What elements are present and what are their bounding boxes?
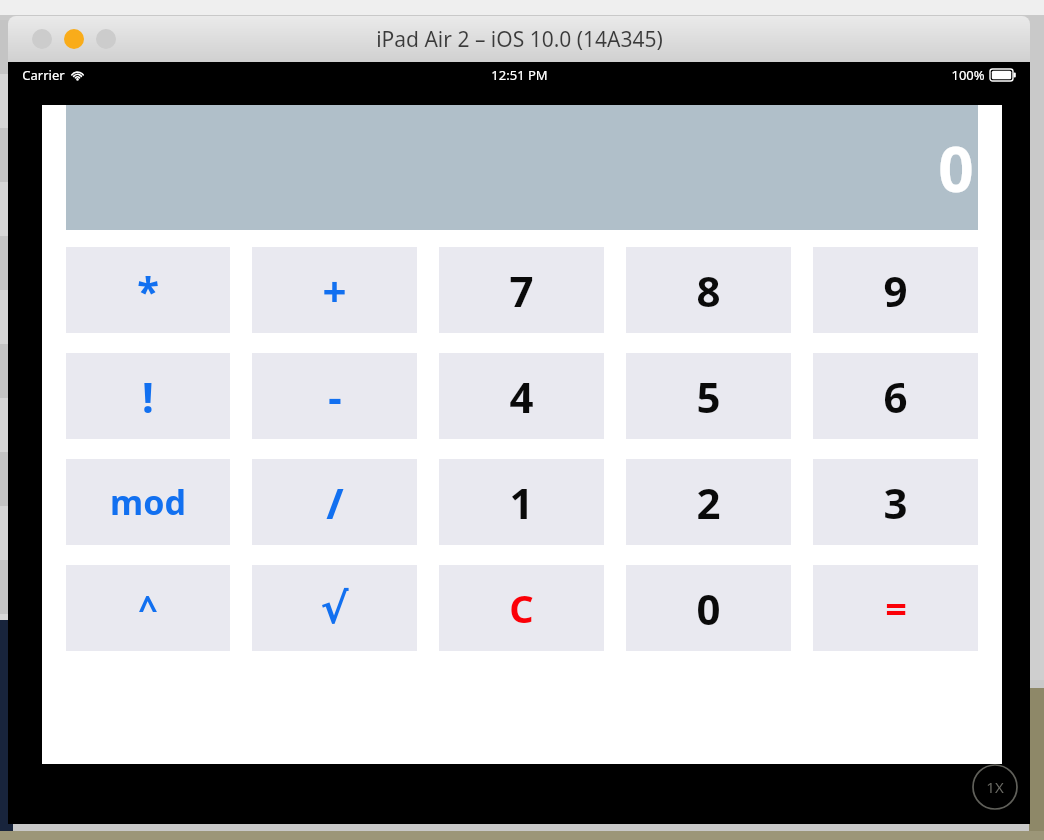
button[interactable]: 9: [813, 247, 978, 333]
button[interactable]: 5: [626, 353, 791, 439]
button[interactable]: !: [66, 353, 230, 439]
staticText: !: [142, 368, 154, 425]
staticText: 100%: [951, 66, 985, 84]
button[interactable]: ^: [66, 565, 230, 651]
button[interactable]: mod: [66, 459, 230, 545]
staticText: 12:51 PM: [491, 66, 548, 84]
staticText: 5: [696, 368, 721, 425]
button[interactable]: 3: [813, 459, 978, 545]
button[interactable]: √: [252, 565, 417, 651]
button[interactable]: 4: [439, 353, 604, 439]
staticText: 0: [938, 126, 974, 210]
staticText: 4: [509, 368, 534, 425]
button[interactable]: 1: [439, 459, 604, 545]
button[interactable]: Zoom window: [96, 29, 116, 49]
staticText: -: [328, 368, 342, 425]
staticText: mod: [110, 479, 186, 525]
staticText: Carrier: [22, 66, 65, 84]
button[interactable]: 8: [626, 247, 791, 333]
staticText: 2: [696, 474, 721, 531]
button[interactable]: Minimize window: [64, 29, 84, 49]
staticText: *: [137, 263, 159, 317]
button[interactable]: C: [439, 565, 604, 651]
staticText: 6: [883, 368, 908, 425]
staticText: 3: [883, 474, 908, 531]
button[interactable]: 0: [626, 565, 791, 651]
staticText: 9: [883, 262, 908, 319]
staticText: =: [885, 582, 907, 634]
button[interactable]: 7: [439, 247, 604, 333]
staticText: 8: [696, 262, 721, 319]
button[interactable]: =: [813, 565, 978, 651]
staticText: C: [509, 582, 534, 634]
button[interactable]: -: [252, 353, 417, 439]
staticText: 0: [696, 580, 721, 637]
button[interactable]: *: [66, 247, 230, 333]
button[interactable]: +: [252, 247, 417, 333]
button[interactable]: Scale 1X: [972, 764, 1018, 810]
button[interactable]: 6: [813, 353, 978, 439]
button[interactable]: Close window: [32, 29, 52, 49]
staticText: 1: [509, 474, 534, 531]
button[interactable]: 2: [626, 459, 791, 545]
staticText: 1X: [986, 777, 1004, 797]
staticText: 7: [509, 262, 534, 319]
staticText: iPad Air 2 – iOS 10.0 (14A345): [376, 25, 663, 54]
staticText: +: [322, 262, 347, 319]
staticText: √: [320, 584, 349, 633]
staticText: ^: [138, 585, 158, 631]
staticText: /: [326, 474, 344, 531]
button[interactable]: /: [252, 459, 417, 545]
